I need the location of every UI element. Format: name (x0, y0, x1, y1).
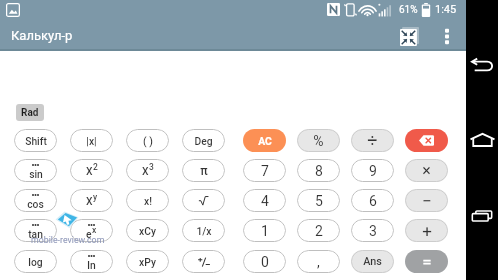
staticText: e (86, 228, 92, 240)
staticText: AC (258, 135, 272, 147)
staticText: x! (144, 195, 152, 207)
button[interactable]: x! (126, 189, 169, 212)
button[interactable]: × (405, 159, 448, 182)
button[interactable]: AC (243, 129, 286, 152)
staticText: ÷ (367, 130, 378, 151)
staticText: log (28, 256, 43, 268)
button[interactable]: xPy (126, 250, 169, 273)
button[interactable]: Back (466, 48, 498, 81)
button[interactable]: 6 (351, 189, 394, 212)
button[interactable]: |x| (70, 129, 113, 152)
staticText: 0 (261, 254, 269, 270)
staticText: 9 (369, 163, 377, 179)
staticText: 1/x (196, 225, 212, 237)
staticText: 3 (149, 162, 154, 172)
button[interactable]: 3 (351, 219, 394, 242)
button[interactable]: π (182, 159, 225, 182)
staticText: , (317, 254, 320, 270)
staticText: × (422, 161, 431, 180)
button[interactable]: − (405, 189, 448, 212)
button[interactable]: % (297, 129, 340, 152)
staticText: x (92, 225, 97, 235)
staticText: Shift (25, 135, 47, 147)
staticText: π (200, 164, 208, 178)
staticText: 1:45 (435, 3, 457, 16)
button[interactable]: Deg (182, 129, 225, 152)
button[interactable]: , (297, 250, 340, 273)
button[interactable]: 4 (243, 189, 286, 212)
button[interactable]: 8 (297, 159, 340, 182)
button[interactable]: sin (14, 159, 57, 182)
button[interactable]: More options (433, 20, 461, 52)
button[interactable]: 0 (243, 250, 286, 273)
button[interactable] (405, 129, 448, 152)
button[interactable]: + (405, 219, 448, 242)
button[interactable]: 7 (243, 159, 286, 182)
button[interactable]: tan (14, 219, 57, 242)
staticText: y (93, 192, 98, 202)
staticText: |x| (86, 135, 97, 147)
staticText: Калькул-р (11, 28, 73, 43)
staticText: xCy (139, 225, 156, 237)
button[interactable]: log (14, 250, 57, 273)
staticText: 3 (369, 223, 377, 239)
staticText: mobile-review.com (31, 235, 105, 245)
staticText: − (422, 191, 432, 211)
button[interactable]: ÷ (351, 129, 394, 152)
staticText: % (313, 133, 324, 149)
staticText: 8 (315, 163, 323, 179)
button[interactable]: X (126, 159, 169, 182)
staticText: sin (29, 168, 43, 180)
button[interactable] (182, 189, 225, 212)
staticText: Rad (21, 107, 39, 119)
button[interactable]: Shift (14, 129, 57, 152)
button[interactable]: ( ) (126, 129, 169, 152)
button[interactable]: Rad (16, 104, 44, 121)
staticText: + (422, 221, 432, 241)
staticText: 61% (399, 4, 418, 16)
button[interactable]: = (405, 250, 448, 273)
staticText: 6 (369, 193, 377, 209)
staticText: 7 (261, 163, 269, 179)
button[interactable] (182, 250, 225, 273)
staticText: X (142, 165, 149, 177)
button[interactable]: 1 (243, 219, 286, 242)
button[interactable]: 2 (297, 219, 340, 242)
staticText: ln (87, 259, 96, 271)
button[interactable]: xCy (126, 219, 169, 242)
staticText: X (86, 195, 93, 207)
button[interactable]: X (70, 159, 113, 182)
button[interactable]: ln (70, 250, 113, 273)
button[interactable]: Recent apps (466, 200, 498, 232)
button[interactable]: Collapse panel (394, 20, 424, 52)
staticText: 1 (261, 223, 269, 239)
staticText: xPy (139, 256, 156, 268)
staticText: Ans (363, 255, 382, 268)
staticText: 2 (315, 223, 323, 239)
staticText: X (86, 165, 93, 177)
staticText: 5 (315, 193, 323, 209)
staticText: tan (28, 228, 43, 240)
staticText: 2 (93, 162, 98, 172)
staticText: ( ) (143, 135, 153, 147)
button[interactable]: 1/x (182, 219, 225, 242)
staticText: Deg (194, 135, 213, 147)
staticText: 4 (261, 193, 269, 209)
staticText: cos (27, 198, 44, 210)
button[interactable]: Home (466, 124, 498, 156)
staticText: = (422, 252, 432, 272)
button[interactable]: cos (14, 189, 57, 212)
button[interactable]: Ans (351, 250, 394, 273)
button[interactable]: 9 (351, 159, 394, 182)
button[interactable]: e (70, 219, 113, 242)
button[interactable]: 5 (297, 189, 340, 212)
button[interactable]: X (70, 189, 113, 212)
